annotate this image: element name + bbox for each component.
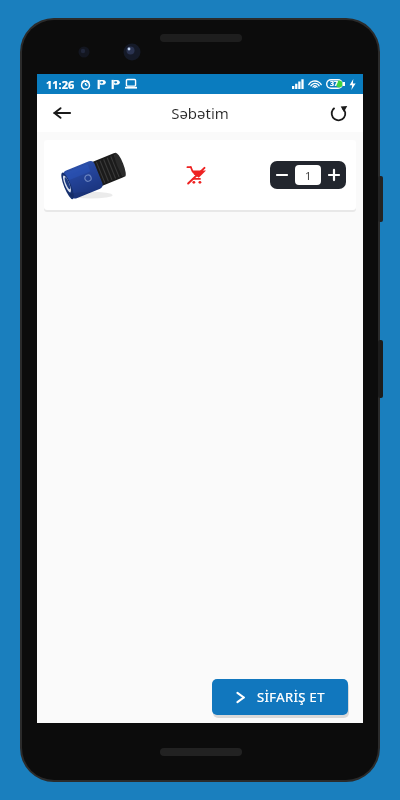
button[interactable]: Refresh bbox=[321, 96, 355, 130]
button[interactable]: Back bbox=[45, 96, 79, 130]
staticText: Səbətim bbox=[171, 103, 229, 123]
button[interactable]: Remove from cart bbox=[44, 140, 356, 210]
staticText: 1 bbox=[305, 168, 312, 183]
staticText: SİFARİŞ ET bbox=[257, 688, 325, 706]
staticText: 37 bbox=[330, 79, 339, 89]
button[interactable]: Remove from cart bbox=[179, 158, 213, 192]
button[interactable]: Decrease quantity bbox=[270, 161, 294, 189]
button[interactable]: Increase quantity bbox=[322, 161, 346, 189]
button[interactable]: SİFARİŞ ET bbox=[212, 679, 348, 715]
staticText: 11:26 bbox=[46, 77, 75, 92]
